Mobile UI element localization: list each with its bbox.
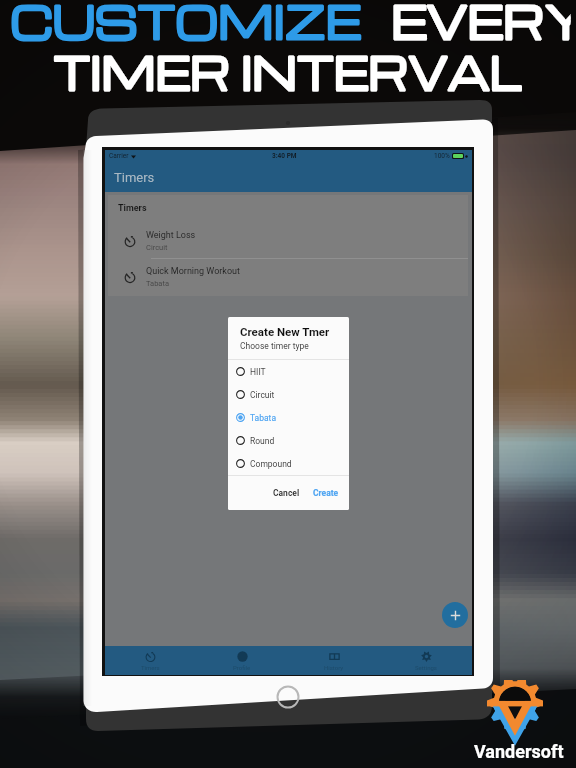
staticText: Circuit — [250, 390, 275, 400]
button[interactable]: Add timer — [442, 602, 468, 628]
staticText: Create — [313, 488, 339, 498]
button[interactable]: History — [288, 646, 380, 675]
button[interactable]: Quick Morning Workout — [108, 259, 468, 294]
staticText: Create New Tmer — [240, 325, 330, 338]
staticText: Timers — [141, 664, 160, 671]
staticText: CUSTOMIZE — [10, 0, 362, 50]
staticText: Carrier — [109, 152, 129, 160]
button[interactable]: Cancel — [269, 485, 304, 501]
staticText: Round — [250, 436, 275, 446]
staticText: Timers — [118, 203, 147, 214]
button[interactable]: Settings — [380, 646, 472, 675]
staticText: Settings — [415, 664, 437, 671]
staticText: Cancel — [273, 488, 300, 498]
staticText: Timers — [114, 170, 155, 185]
button[interactable]: Profile — [196, 646, 288, 675]
staticText: Tabata — [250, 413, 277, 423]
staticText: CUSTOMIZE — [10, 0, 362, 50]
staticText: Choose timer type — [240, 341, 309, 351]
staticText: TIMER INTERVAL — [53, 40, 522, 99]
staticText: Weight Loss — [146, 230, 196, 241]
button[interactable]: Circuit — [228, 383, 349, 406]
staticText: Quick Morning Workout — [146, 266, 240, 277]
button[interactable]: Timers — [105, 646, 196, 675]
button[interactable]: HIIT — [228, 360, 349, 383]
staticText: 100% — [434, 152, 450, 160]
button[interactable]: Compound — [228, 452, 349, 475]
staticText: Tabata — [146, 279, 169, 288]
staticText: Profile — [233, 664, 251, 671]
staticText: EVERY — [391, 0, 571, 50]
button[interactable]: Round — [228, 429, 349, 452]
staticText: EVERY — [391, 0, 571, 50]
staticText: TIMER INTERVAL — [53, 40, 522, 99]
button[interactable]: Weight Loss — [108, 223, 468, 258]
staticText: Circuit — [146, 243, 168, 252]
button[interactable]: Create — [309, 485, 343, 501]
staticText: Compound — [250, 459, 292, 469]
button[interactable]: Tabata — [228, 406, 349, 429]
staticText: Vandersoft — [474, 741, 564, 762]
staticText: HIIT — [250, 367, 266, 377]
staticText: History — [324, 664, 344, 671]
staticText: 3:40 PM — [272, 152, 297, 160]
